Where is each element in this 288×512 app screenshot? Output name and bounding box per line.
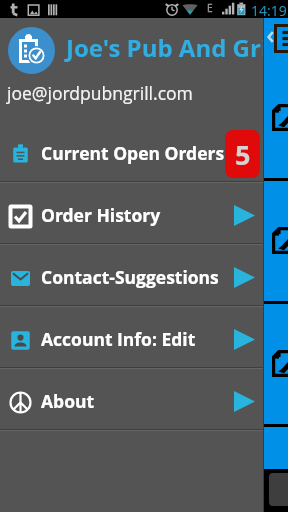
- button[interactable]: Edit: [0, 58, 288, 178]
- other: Edit: [272, 227, 288, 254]
- staticText: Account Info: Edit: [41, 327, 196, 351]
- staticText: Order History: [41, 203, 161, 227]
- button[interactable]: Contact-Suggestions: [0, 245, 264, 305]
- other: Edit: [272, 350, 288, 377]
- staticText: Current Open Orders: [41, 141, 225, 165]
- button[interactable]: Edit: [0, 427, 288, 469]
- other: Recents: [269, 473, 288, 506]
- staticText: joe@jordpubngrill.com: [7, 81, 193, 105]
- other: Menu: [274, 24, 288, 50]
- button[interactable]: Current Open Orders: [0, 121, 264, 181]
- staticText: E: [207, 1, 213, 15]
- button[interactable]: Order History: [0, 183, 264, 243]
- staticText: Joe's Pub And Grill: [66, 31, 264, 64]
- button[interactable]: Account Info: Edit: [0, 307, 264, 367]
- button[interactable]: Edit: [0, 181, 288, 301]
- staticText: Contact-Suggestions: [41, 265, 219, 289]
- staticText: 5: [235, 136, 251, 173]
- staticText: About: [41, 389, 95, 413]
- button[interactable]: Edit: [0, 304, 288, 424]
- other: Edit: [272, 104, 288, 131]
- staticText: 14:19: [251, 1, 287, 19]
- button[interactable]: About: [0, 369, 264, 429]
- other: Back: [267, 31, 274, 43]
